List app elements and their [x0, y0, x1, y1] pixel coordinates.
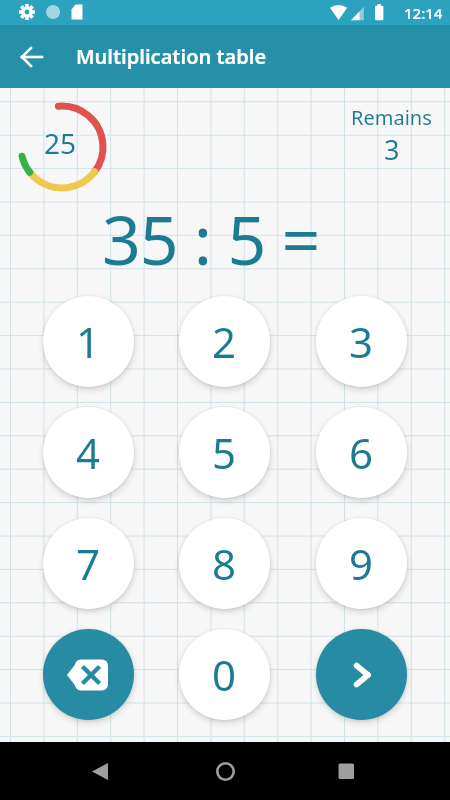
- staticText: 5: [212, 424, 237, 481]
- staticText: Remains: [351, 104, 432, 131]
- staticText: 4: [76, 424, 101, 481]
- staticText: 3: [384, 131, 400, 168]
- button[interactable]: [0, 25, 63, 88]
- button[interactable]: [316, 629, 407, 720]
- staticText: 35 : 5 =: [102, 192, 320, 282]
- staticText: 3: [349, 313, 374, 370]
- button[interactable]: 2: [179, 296, 270, 387]
- button[interactable]: 3: [316, 296, 407, 387]
- button[interactable]: 6: [316, 407, 407, 498]
- staticText: 9: [349, 535, 374, 592]
- staticText: 8: [212, 535, 237, 592]
- button[interactable]: [150, 742, 300, 800]
- staticText: 2: [212, 313, 237, 370]
- button[interactable]: 0: [179, 629, 270, 720]
- staticText: 6: [349, 424, 374, 481]
- button[interactable]: 4: [43, 407, 134, 498]
- staticText: 7: [76, 535, 101, 592]
- staticText: Multiplication table: [76, 43, 267, 70]
- button[interactable]: 1: [43, 296, 134, 387]
- button[interactable]: 8: [179, 518, 270, 609]
- button[interactable]: [43, 629, 134, 720]
- staticText: 1: [76, 313, 101, 370]
- button[interactable]: 7: [43, 518, 134, 609]
- button[interactable]: [300, 742, 450, 800]
- staticText: 25: [44, 124, 77, 162]
- button[interactable]: 5: [179, 407, 270, 498]
- button[interactable]: [0, 742, 150, 800]
- button[interactable]: 9: [316, 518, 407, 609]
- staticText: 12:14: [404, 3, 443, 23]
- staticText: 0: [212, 646, 237, 703]
